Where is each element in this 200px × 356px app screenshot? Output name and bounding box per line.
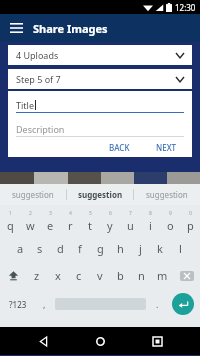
button[interactable]: j [130, 235, 150, 262]
staticText: . [156, 298, 159, 310]
button[interactable]: 2 [20, 208, 40, 235]
staticText: 4 Uploads [16, 49, 59, 61]
staticText: q [7, 218, 14, 233]
staticText: f [78, 241, 82, 256]
staticText: 3 [49, 210, 52, 217]
staticText: d [57, 241, 64, 256]
button[interactable]: suggestion [67, 184, 133, 205]
button[interactable]: Step 5 of 7 [8, 69, 192, 89]
staticText: Step 5 of 7 [16, 73, 61, 85]
staticText: w [26, 218, 35, 233]
button[interactable]: 9 [160, 208, 180, 235]
staticText: o [167, 218, 174, 233]
button[interactable]: d [50, 235, 70, 262]
staticText: ?123 [9, 299, 27, 310]
button[interactable]: 6 [100, 208, 120, 235]
button[interactable]: 8 [140, 208, 160, 235]
staticText: Description [16, 123, 65, 135]
button[interactable]: z [26, 262, 47, 289]
staticText: , [43, 298, 46, 310]
button[interactable]: 7 [120, 208, 140, 235]
staticText: 4 [69, 210, 72, 217]
button[interactable]: Description [16, 121, 184, 137]
button[interactable]: BACK [109, 142, 130, 153]
button[interactable]: NEXT [156, 142, 177, 153]
staticText: c [76, 268, 82, 283]
staticText: suggestion [78, 189, 123, 200]
button[interactable]: f [70, 235, 90, 262]
button[interactable]: , [35, 289, 53, 319]
staticText: r [68, 218, 73, 233]
staticText: a [17, 241, 24, 256]
button[interactable]: Enter [172, 293, 194, 315]
staticText: Share Images [33, 21, 108, 36]
staticText: p [187, 218, 194, 233]
button[interactable]: k [150, 235, 170, 262]
button[interactable]: g [90, 235, 110, 262]
staticText: 2 [29, 210, 32, 217]
button[interactable]: suggestion [134, 184, 200, 205]
staticText: BACK [109, 142, 130, 153]
staticText: suggestion [12, 189, 54, 200]
button[interactable]: Backspace [173, 262, 200, 289]
button[interactable]: 1 [0, 208, 20, 235]
button[interactable]: x [47, 262, 68, 289]
staticText: 9 [169, 210, 172, 217]
button[interactable]: suggestion [0, 184, 66, 205]
staticText: 7 [129, 210, 132, 217]
button[interactable]: h [110, 235, 130, 262]
staticText: s [37, 241, 43, 256]
staticText: suggestion [146, 189, 188, 200]
staticText: y [107, 218, 113, 233]
staticText: 8 [149, 210, 152, 217]
button[interactable]: Open navigation menu [6, 18, 26, 38]
staticText: 5 [89, 210, 92, 217]
button[interactable]: 4 [60, 208, 80, 235]
staticText: i [149, 218, 152, 233]
staticText: m [157, 268, 168, 283]
button[interactable]: Title [16, 96, 184, 113]
staticText: 0 [189, 210, 192, 217]
button[interactable]: s [30, 235, 50, 262]
button[interactable]: ?123 [0, 289, 35, 319]
staticText: 6 [109, 210, 112, 217]
staticText: 1 [9, 210, 12, 217]
button[interactable]: Back [29, 327, 57, 355]
button[interactable]: Home [86, 327, 114, 355]
button[interactable]: 3 [40, 208, 60, 235]
button[interactable]: l [170, 235, 190, 262]
staticText: u [127, 218, 134, 233]
staticText: t [88, 218, 92, 233]
button[interactable]: n [131, 262, 152, 289]
staticText: l [179, 241, 182, 256]
button[interactable]: 5 [80, 208, 100, 235]
button[interactable]: m [152, 262, 173, 289]
button[interactable]: v [89, 262, 110, 289]
staticText: x [55, 268, 61, 283]
staticText: k [157, 241, 163, 256]
staticText: b [117, 268, 124, 283]
button[interactable]: 0 [180, 208, 200, 235]
button[interactable]: c [68, 262, 89, 289]
staticText: v [97, 268, 103, 283]
button[interactable]: b [110, 262, 131, 289]
button[interactable]: Shift [0, 262, 26, 289]
button[interactable]: . [148, 289, 166, 319]
staticText: NEXT [156, 142, 177, 153]
button[interactable]: Recent apps [143, 327, 171, 355]
button[interactable]: a [10, 235, 30, 262]
staticText: z [34, 268, 40, 283]
staticText: g [97, 241, 104, 256]
button[interactable]: 4 Uploads [8, 45, 192, 65]
staticText: e [47, 218, 54, 233]
staticText: j [139, 241, 142, 256]
staticText: 12:30 [175, 2, 196, 13]
staticText: Title [16, 99, 34, 111]
staticText: h [117, 241, 124, 256]
staticText: n [138, 268, 145, 283]
